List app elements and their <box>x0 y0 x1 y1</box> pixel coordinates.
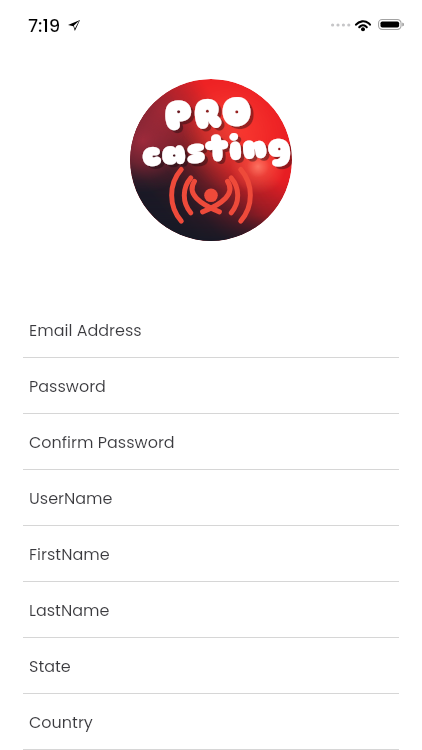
staticText: LastName <box>29 599 110 621</box>
staticText: FirstName <box>29 543 110 565</box>
button[interactable]: Email Address <box>0 302 422 358</box>
staticText: casting <box>140 123 292 177</box>
button[interactable]: State <box>0 638 422 694</box>
staticText: Password <box>29 375 106 397</box>
button[interactable]: Country <box>0 694 422 750</box>
button[interactable]: FirstName <box>0 526 422 582</box>
staticText: Confirm Password <box>29 431 175 453</box>
button[interactable]: Confirm Password <box>0 414 422 470</box>
button[interactable]: Password <box>0 358 422 414</box>
staticText: casting <box>143 126 292 180</box>
staticText: Email Address <box>29 319 142 341</box>
staticText: PRO <box>161 86 255 143</box>
staticText: PRO <box>164 89 258 146</box>
button[interactable]: LastName <box>0 582 422 638</box>
staticText: State <box>29 655 71 677</box>
staticText: Country <box>29 711 93 733</box>
staticText: 7:19 <box>28 13 61 38</box>
staticText: UserName <box>29 487 113 509</box>
button[interactable]: UserName <box>0 470 422 526</box>
